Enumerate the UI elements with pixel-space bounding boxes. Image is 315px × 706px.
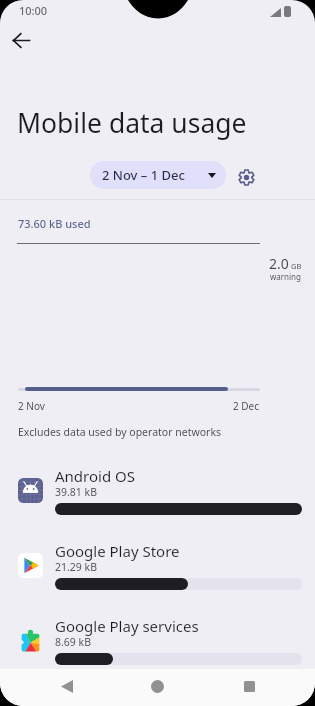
button[interactable]: Home <box>140 669 175 704</box>
staticText: 10:00 <box>19 3 48 18</box>
staticText: 73.60 kB used <box>18 216 91 231</box>
staticText: 2.0 <box>269 254 289 273</box>
staticText: 8.69 kB <box>55 635 91 649</box>
staticText: 2 Dec <box>233 399 260 413</box>
staticText: 39.81 kB <box>55 485 97 499</box>
button[interactable]: Back <box>49 669 84 704</box>
staticText: Mobile data usage <box>17 105 247 141</box>
staticText: 2 Nov – 1 Dec <box>102 166 185 184</box>
staticText: GB <box>291 261 302 271</box>
staticText: 2 Nov <box>18 399 45 413</box>
staticText: 21.29 kB <box>55 560 97 574</box>
button[interactable]: Settings <box>232 163 260 191</box>
button[interactable]: Navigate up <box>6 25 37 56</box>
staticText: Android OS <box>55 466 135 486</box>
button[interactable]: 2 Nov – 1 Dec <box>90 161 226 189</box>
staticText: Google Play Store <box>55 541 180 561</box>
button[interactable]: Google Play services <box>0 613 315 688</box>
button[interactable]: Recent apps <box>232 669 267 704</box>
button[interactable]: Google Play Store <box>0 538 315 613</box>
staticText: Google Play services <box>55 616 199 636</box>
button[interactable]: Android OS <box>0 463 315 538</box>
staticText: Excludes data used by operator networks <box>18 425 222 439</box>
staticText: warning <box>270 271 301 282</box>
